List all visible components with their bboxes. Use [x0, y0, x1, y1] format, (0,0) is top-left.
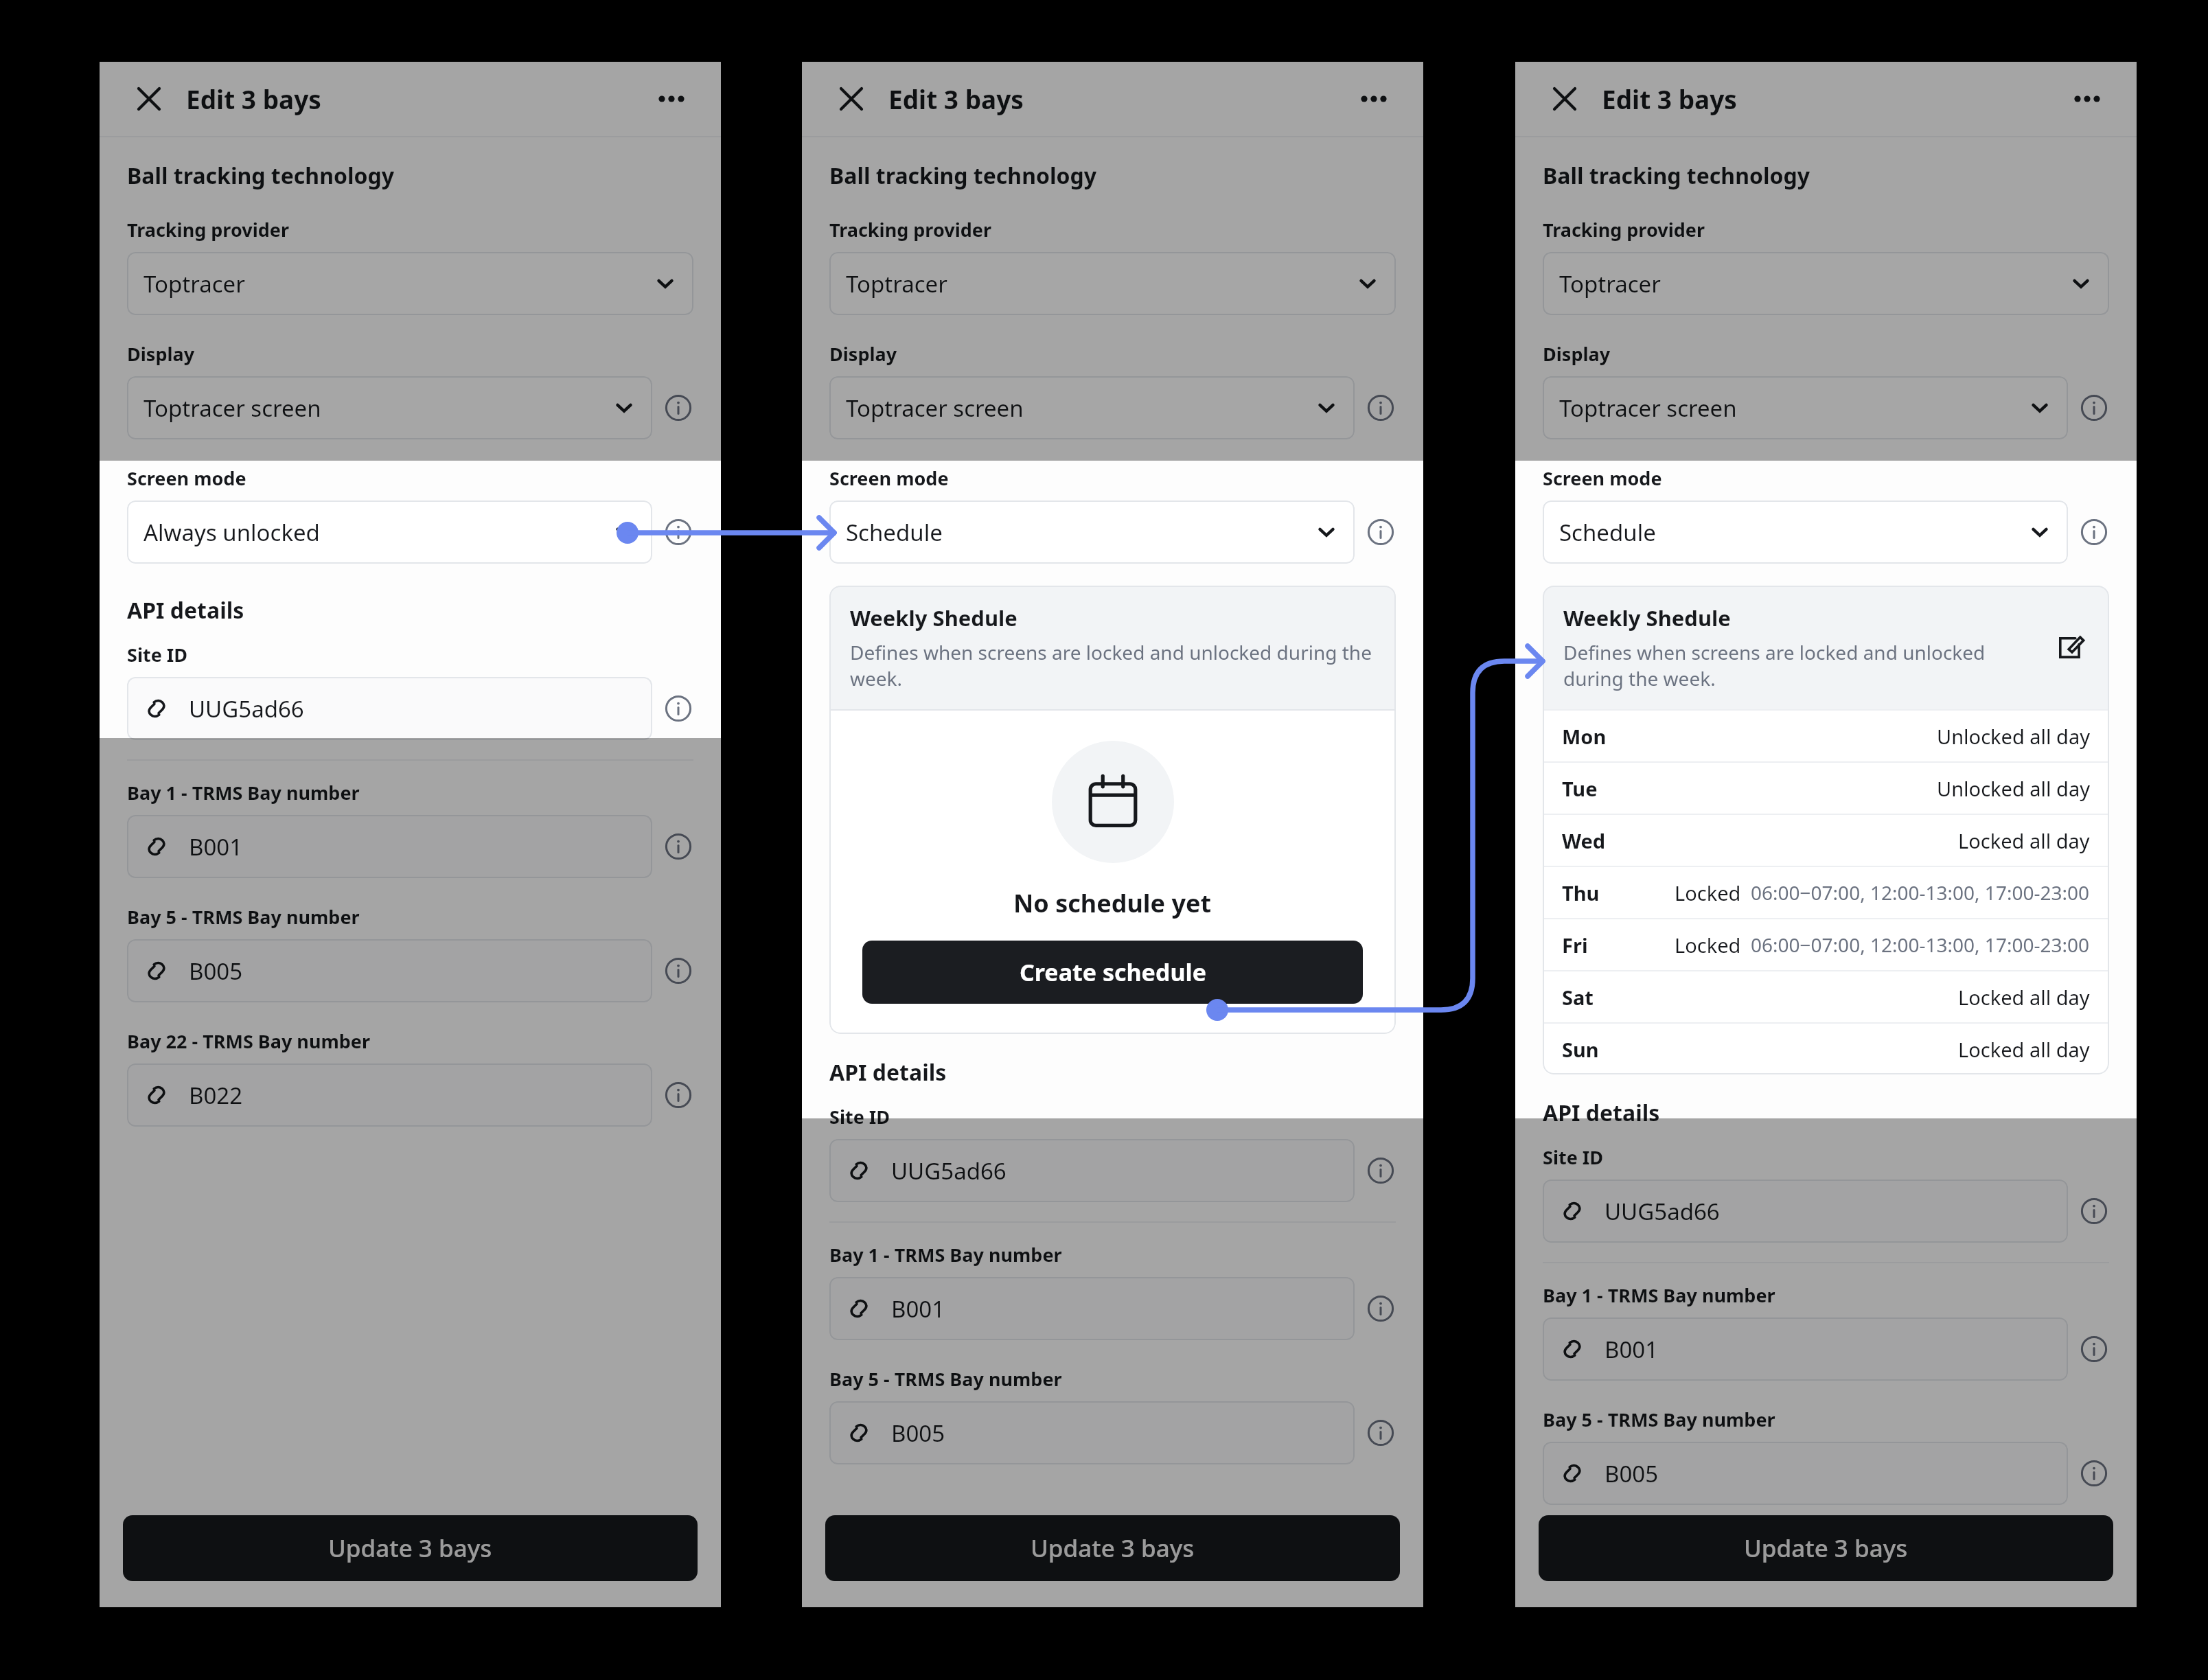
button[interactable]: Info	[1366, 517, 1396, 547]
staticText: Sat	[1562, 984, 1594, 1011]
button[interactable]: More options	[1352, 77, 1396, 121]
button[interactable]: Thu	[1543, 867, 2109, 918]
button[interactable]: B005	[829, 1401, 1355, 1464]
staticText: Locked	[1675, 879, 1741, 906]
button[interactable]: B005	[1543, 1442, 2068, 1505]
staticText: UUG5ad66	[891, 1155, 1007, 1186]
staticText: UUG5ad66	[1605, 1196, 1720, 1227]
button[interactable]: Mon	[1543, 711, 2109, 761]
staticText: Thu	[1562, 879, 1600, 906]
staticText: API details	[127, 595, 244, 625]
button[interactable]: Toptracer	[829, 252, 1396, 315]
button[interactable]: UUG5ad66	[127, 677, 652, 740]
button[interactable]: Always unlocked	[127, 500, 652, 564]
button[interactable]: Toptracer screen	[829, 376, 1355, 439]
staticText: Defines when screens are locked and unlo…	[1563, 639, 2038, 691]
button[interactable]: Info	[663, 393, 693, 423]
staticText: Bay 5 - TRMS Bay number	[1543, 1407, 1775, 1432]
button[interactable]: More options	[649, 77, 693, 121]
staticText: Bay 1 - TRMS Bay number	[127, 780, 360, 805]
staticText: B001	[1605, 1334, 1659, 1365]
button[interactable]: Tue	[1543, 763, 2109, 814]
button[interactable]: B001	[1543, 1317, 2068, 1381]
button[interactable]: Info	[663, 1080, 693, 1110]
button[interactable]: Update 3 bays	[1539, 1515, 2113, 1581]
staticText: Sun	[1562, 1036, 1599, 1063]
staticText: Bay 1 - TRMS Bay number	[829, 1242, 1062, 1267]
staticText: Screen mode	[829, 465, 949, 491]
staticText: 06:00−07:00, 12:00-13:00, 17:00-23:00	[1751, 932, 2090, 958]
button[interactable]: B001	[127, 815, 652, 878]
staticText: UUG5ad66	[189, 693, 304, 724]
button[interactable]: Close	[1543, 77, 1587, 121]
staticText: Edit 3 bays	[888, 82, 1024, 116]
staticText: Create schedule	[1020, 956, 1206, 988]
button[interactable]: UUG5ad66	[829, 1139, 1355, 1202]
button[interactable]: Info	[2079, 1458, 2109, 1488]
staticText: Ball tracking technology	[1543, 161, 1810, 191]
button[interactable]: Info	[663, 517, 693, 547]
staticText: Locked all day	[1958, 827, 2090, 854]
button[interactable]: Sun	[1543, 1024, 2109, 1074]
staticText: Toptracer screen	[1559, 393, 1737, 424]
staticText: API details	[829, 1057, 947, 1088]
staticText: Site ID	[127, 642, 188, 667]
staticText: Schedule	[1559, 517, 1656, 548]
staticText: Update 3 bays	[1031, 1532, 1195, 1565]
staticText: API details	[1543, 1098, 1660, 1128]
staticText: Weekly Shedule	[850, 603, 1017, 632]
button[interactable]: Toptracer screen	[127, 376, 652, 439]
button[interactable]: B001	[829, 1277, 1355, 1340]
button[interactable]: Close	[127, 77, 171, 121]
button[interactable]: Toptracer	[1543, 252, 2109, 315]
button[interactable]: Info	[2079, 1334, 2109, 1364]
button[interactable]: Sat	[1543, 971, 2109, 1022]
staticText: Edit 3 bays	[186, 82, 321, 116]
button[interactable]: Info	[663, 956, 693, 986]
button[interactable]: Close	[829, 77, 873, 121]
button[interactable]: UUG5ad66	[1543, 1180, 2068, 1243]
button[interactable]: Fri	[1543, 919, 2109, 970]
button[interactable]: Toptracer screen	[1543, 376, 2068, 439]
button[interactable]: Info	[2079, 393, 2109, 423]
staticText: Bay 1 - TRMS Bay number	[1543, 1282, 1775, 1308]
button[interactable]: Info	[1366, 1418, 1396, 1448]
button[interactable]: Schedule	[1543, 500, 2068, 564]
staticText: Display	[1543, 341, 1611, 367]
staticText: Unlocked all day	[1937, 723, 2090, 750]
staticText: B005	[189, 956, 243, 987]
staticText: Schedule	[846, 517, 943, 548]
staticText: Screen mode	[1543, 465, 1662, 491]
staticText: Site ID	[829, 1104, 890, 1129]
staticText: Tracking provider	[1543, 217, 1705, 242]
button[interactable]: Schedule	[829, 500, 1355, 564]
button[interactable]: Info	[1366, 393, 1396, 423]
staticText: Update 3 bays	[328, 1532, 492, 1565]
button[interactable]: Info	[663, 831, 693, 862]
staticText: Ball tracking technology	[829, 161, 1096, 191]
staticText: Locked all day	[1958, 984, 2090, 1011]
button[interactable]: Edit schedule	[2050, 628, 2089, 667]
staticText: B005	[891, 1418, 945, 1449]
button[interactable]: B005	[127, 939, 652, 1002]
button[interactable]: Wed	[1543, 815, 2109, 866]
staticText: Always unlocked	[143, 517, 320, 548]
staticText: Locked all day	[1958, 1036, 2090, 1063]
button[interactable]: B022	[127, 1063, 652, 1127]
staticText: Toptracer screen	[143, 393, 321, 424]
staticText: Bay 5 - TRMS Bay number	[127, 904, 360, 930]
button[interactable]: Create schedule	[862, 941, 1363, 1004]
button[interactable]: Info	[663, 693, 693, 724]
button[interactable]: Toptracer	[127, 252, 693, 315]
button[interactable]: Update 3 bays	[123, 1515, 698, 1581]
button[interactable]: Info	[2079, 1196, 2109, 1226]
button[interactable]: Info	[2079, 517, 2109, 547]
button[interactable]: Info	[1366, 1155, 1396, 1186]
button[interactable]: Update 3 bays	[825, 1515, 1400, 1581]
button[interactable]: Info	[1366, 1293, 1396, 1324]
button[interactable]: More options	[2065, 77, 2109, 121]
staticText: Ball tracking technology	[127, 161, 394, 191]
staticText: Fri	[1562, 932, 1588, 958]
staticText: Toptracer	[1559, 268, 1661, 299]
staticText: Tue	[1562, 775, 1598, 802]
